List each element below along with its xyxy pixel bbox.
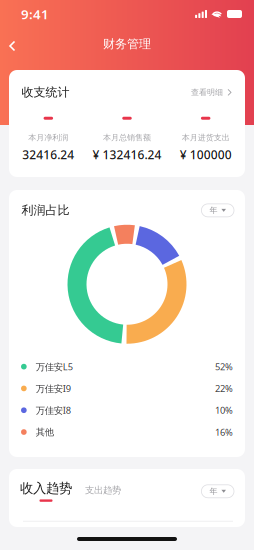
staticText: 年 <box>209 486 217 496</box>
staticText: 万佳安I8 <box>36 404 71 416</box>
staticText: 财务管理 <box>103 37 151 51</box>
staticText: 收支统计 <box>21 85 69 100</box>
staticText: 查看明细 <box>191 87 223 97</box>
button[interactable]: 年 <box>201 204 234 217</box>
staticText: 52% <box>215 360 233 373</box>
staticText: 22% <box>215 382 233 395</box>
staticText: 32416.24 <box>22 147 74 162</box>
staticText: 万佳安I9 <box>36 382 71 395</box>
staticText: 收入趋势 <box>20 480 72 496</box>
staticText: 本月净利润 <box>28 133 68 142</box>
staticText: 本月进货支出 <box>182 133 230 142</box>
staticText: 利润占比 <box>21 203 69 218</box>
staticText: 万佳安L5 <box>36 360 73 373</box>
staticText: ¥ 100000 <box>180 147 232 162</box>
staticText: 支出趋势 <box>85 484 121 496</box>
staticText: ¥ 132416.24 <box>92 147 161 162</box>
button[interactable]: 支出趋势 <box>72 484 121 502</box>
staticText: 9:41 <box>21 5 49 23</box>
staticText: 其他 <box>36 426 54 438</box>
button[interactable]: 年 <box>201 485 234 498</box>
staticText: 10% <box>215 404 233 416</box>
staticText: 本月总销售额 <box>103 133 151 142</box>
button[interactable]: 查看明细 <box>191 87 231 97</box>
staticText: 年 <box>209 205 217 215</box>
staticText: 16% <box>215 426 233 438</box>
button[interactable]: 返回 <box>0 32 27 55</box>
button[interactable]: 收入趋势 <box>20 480 72 502</box>
